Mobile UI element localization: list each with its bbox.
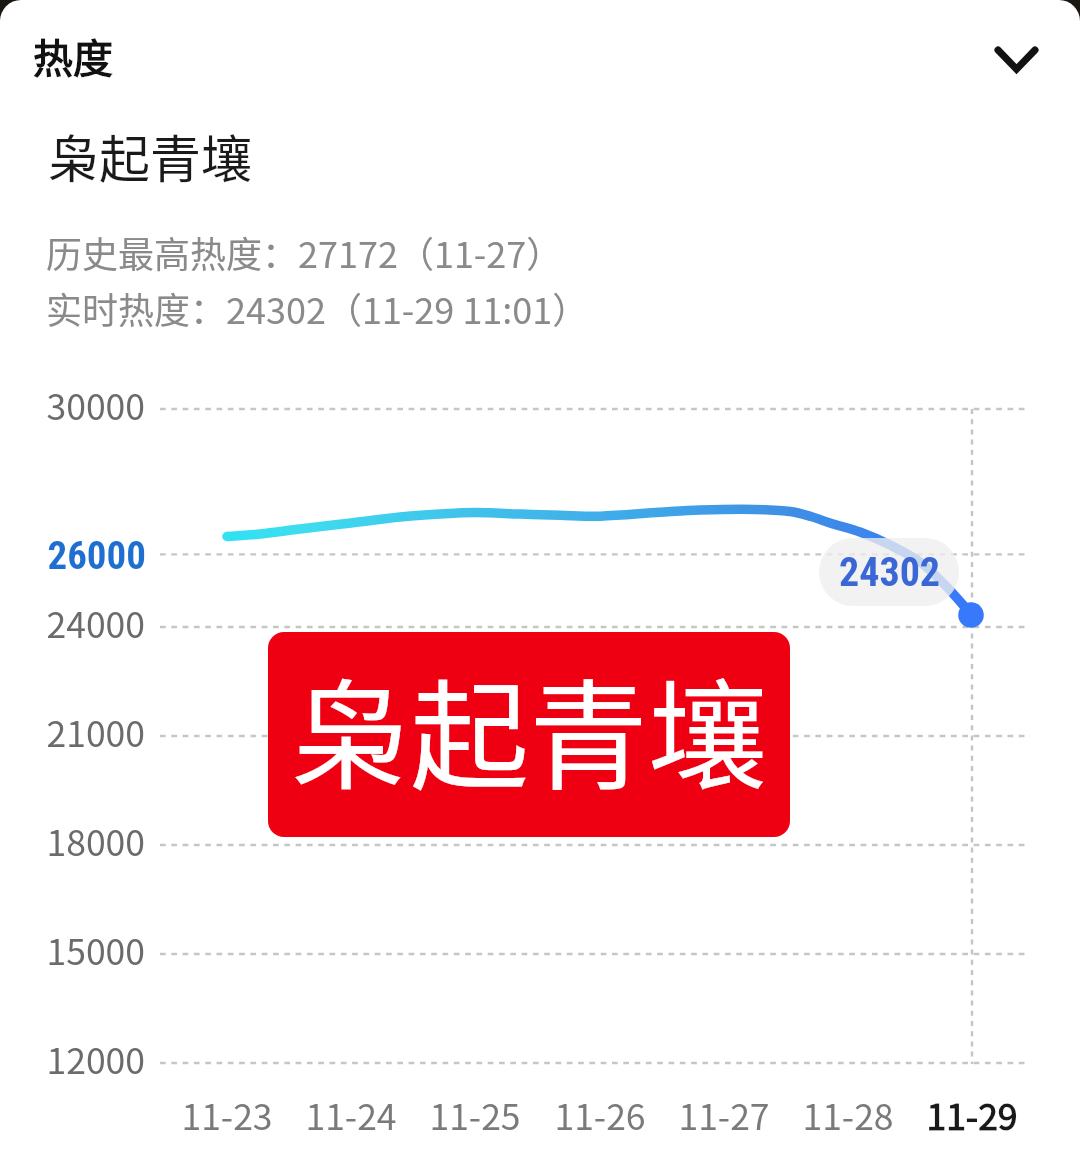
staticText: 11-25 xyxy=(405,1089,545,1140)
staticText: 30000 xyxy=(1,379,145,430)
staticText: 24000 xyxy=(1,597,145,648)
staticText: 11-23 xyxy=(157,1089,297,1140)
staticText: 11-27 xyxy=(654,1089,794,1140)
staticText: 26000 xyxy=(2,533,146,579)
staticText: 11-29 xyxy=(902,1089,1042,1140)
staticText: 21000 xyxy=(1,706,145,757)
staticText: 热度 xyxy=(33,27,113,85)
staticText: 11-24 xyxy=(281,1089,421,1140)
staticText: 枭起青壤 xyxy=(48,119,253,193)
staticText: 15000 xyxy=(1,924,145,975)
staticText: 历史最高热度：27172（11-27） xyxy=(46,226,563,278)
button[interactable]: 收起 xyxy=(967,19,1067,99)
staticText: 枭起青壤 xyxy=(291,642,767,814)
staticText: 11-26 xyxy=(530,1089,670,1140)
staticText: 12000 xyxy=(1,1033,145,1084)
staticText: 11-28 xyxy=(778,1089,918,1140)
staticText: 18000 xyxy=(1,815,145,866)
staticText: 24302 xyxy=(839,549,941,596)
staticText: 实时热度：24302（11-29 11:01） xyxy=(46,282,589,334)
